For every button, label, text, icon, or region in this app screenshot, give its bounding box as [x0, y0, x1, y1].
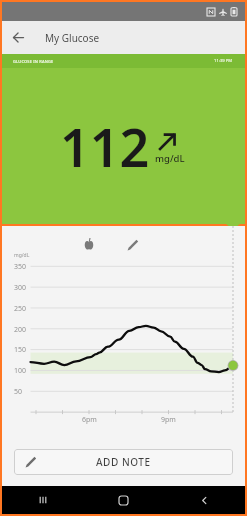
button[interactable]: Back — [164, 486, 245, 514]
button[interactable]: Recent apps — [2, 486, 83, 514]
staticText: 9pm — [161, 415, 176, 425]
staticText: GLUCOSE IN RANGE — [13, 59, 54, 64]
staticText: 200 — [14, 325, 27, 335]
button[interactable]: Back — [2, 21, 35, 54]
staticText: 300 — [14, 283, 27, 293]
staticText: 350 — [14, 262, 27, 272]
staticText: ADD NOTE — [96, 455, 151, 469]
staticText: mg/dL — [155, 152, 185, 165]
button[interactable]: Add food — [81, 236, 97, 252]
staticText: mg/dL — [14, 252, 30, 259]
staticText: 112 — [60, 111, 150, 182]
staticText: 6pm — [82, 415, 97, 425]
staticText: 250 — [14, 304, 27, 314]
staticText: My Glucose — [45, 31, 100, 45]
button[interactable]: Add note — [125, 237, 141, 253]
button[interactable]: ADD NOTE — [14, 449, 233, 475]
button[interactable]: Home — [83, 486, 164, 514]
staticText: 11:39 PM — [214, 58, 233, 64]
staticText: 150 — [14, 345, 27, 355]
staticText: 50 — [14, 387, 23, 397]
staticText: 100 — [14, 366, 27, 376]
